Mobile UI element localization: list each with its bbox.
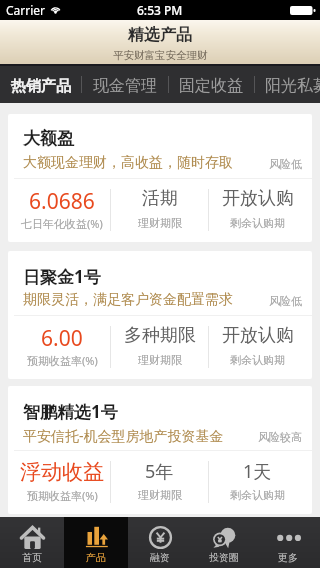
other: 更多 [277,526,300,549]
staticText: 理财期限 [138,353,182,367]
staticText: 预期收益率(%) [27,488,98,503]
button[interactable]: 产品 [64,517,128,568]
staticText: 七日年化收益(%) [21,216,103,231]
staticText: 6.00 [41,324,83,353]
staticText: 5年 [145,459,174,484]
staticText: 产品 [86,551,106,564]
staticText: 理财期限 [138,488,182,502]
button[interactable]: 日聚金1号 [8,251,312,379]
staticText: 大额盈 [23,128,74,149]
staticText: Carrier [6,2,46,18]
staticText: 大额现金理财，高收益，随时存取 [23,154,233,172]
button[interactable]: 更多 [256,517,320,568]
staticText: 更多 [278,551,298,564]
staticText: 风险较高 [258,430,302,444]
staticText: 热销产品 [11,77,71,96]
other: 融资 [149,526,172,549]
staticText: 预期收益率(%) [27,353,98,368]
staticText: 风险低 [269,157,302,171]
staticText: 平安财富宝安全理财 [113,49,208,62]
button[interactable]: 热销产品 [0,64,81,103]
other: 首页 [21,526,44,549]
button[interactable]: 阳光私募 [254,64,320,103]
staticText: 日聚金1号 [23,265,101,288]
staticText: 阳光私募 [265,76,320,96]
staticText: 首页 [22,551,42,564]
staticText: 1天 [243,459,272,484]
staticText: 剩余认购期 [230,488,285,502]
staticText: 6.0686 [29,187,95,216]
staticText: 平安信托-机会型房地产投资基金 [23,426,224,445]
staticText: 风险低 [269,294,302,308]
button[interactable]: 融资 [128,517,192,568]
staticText: 开放认购 [222,324,294,347]
button[interactable]: 大额盈 [8,114,312,242]
button[interactable]: 首页 [0,517,64,568]
staticText: 投资圈 [209,551,239,564]
staticText: 剩余认购期 [230,353,285,367]
other: 产品 [85,526,108,549]
staticText: 智鹏精选1号 [23,400,118,423]
staticText: 理财期限 [138,216,182,230]
staticText: 开放认购 [222,187,294,210]
staticText: 活期 [142,187,178,210]
other: 投资圈 [213,526,236,549]
staticText: 固定收益 [179,76,243,96]
button[interactable]: 固定收益 [168,64,254,103]
staticText: 精选产品 [128,25,192,45]
button[interactable]: 现金管理 [81,64,168,103]
staticText: 期限灵活，满足客户资金配置需求 [23,291,233,309]
button[interactable]: 投资圈 [192,517,256,568]
staticText: 融资 [150,551,170,564]
staticText: 浮动收益 [20,459,104,485]
staticText: 6:53 PM [137,2,183,18]
staticText: 剩余认购期 [230,216,285,230]
staticText: 多种期限 [124,324,196,347]
button[interactable]: 智鹏精选1号 [8,386,312,514]
staticText: 现金管理 [93,76,157,96]
